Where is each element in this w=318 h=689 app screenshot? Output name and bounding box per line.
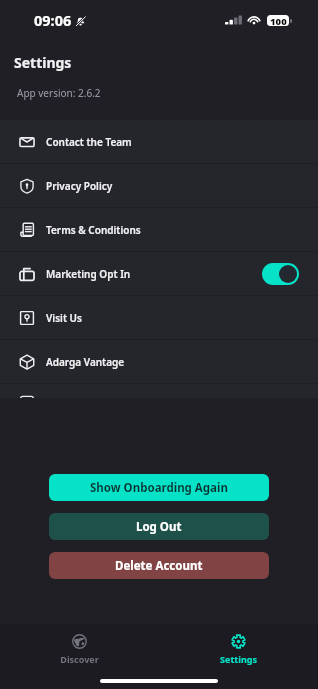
button[interactable]: Marketing Opt In [0, 252, 318, 295]
staticText: Settings [14, 53, 72, 72]
staticText: Delete Account [115, 558, 203, 574]
button[interactable]: Visit Us [0, 296, 318, 339]
staticText: App version: 2.6.2 [17, 86, 101, 100]
button[interactable]: Rate the App [0, 384, 318, 398]
button[interactable]: Log Out [49, 513, 269, 540]
staticText: Discover [60, 653, 99, 665]
button[interactable]: Terms & Conditions [0, 208, 318, 251]
staticText: 100 [270, 15, 287, 26]
button[interactable]: Contact the Team [0, 120, 318, 163]
staticText: Contact the Team [46, 135, 132, 149]
staticText: Visit Us [46, 311, 82, 325]
staticText: Marketing Opt In [46, 267, 131, 281]
button[interactable]: Settings [159, 624, 318, 665]
staticText: 09:06 [34, 10, 72, 30]
button[interactable]: Delete Account [49, 552, 269, 579]
staticText: Log Out [136, 519, 182, 535]
button[interactable]: Privacy Policy [0, 164, 318, 207]
button[interactable]: Discover [0, 624, 159, 665]
staticText: Privacy Policy [46, 179, 113, 193]
button[interactable]: Adarga Vantage [0, 340, 318, 383]
staticText: Settings [220, 653, 257, 665]
staticText: Show Onboarding Again [90, 480, 228, 496]
staticText: Adarga Vantage [46, 355, 125, 369]
staticText: Terms & Conditions [46, 223, 141, 237]
button[interactable]: Show Onboarding Again [49, 474, 269, 501]
button[interactable]: Marketing opt in toggle [262, 263, 299, 285]
